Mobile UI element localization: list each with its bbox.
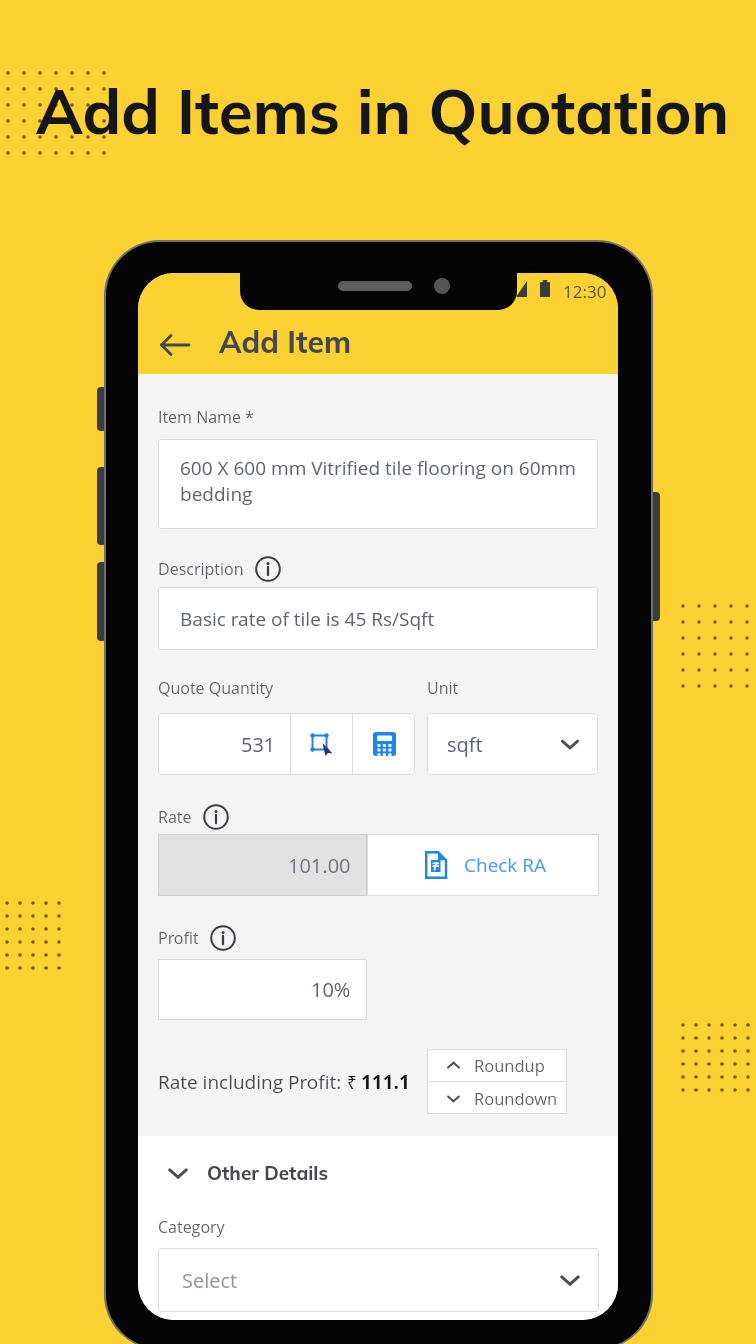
staticText: 600 X 600 mm Vitrified tile flooring on …: [180, 455, 584, 507]
staticText: 101.00: [288, 852, 351, 879]
button[interactable]: Calculator: [353, 713, 415, 775]
button[interactable]: Select: [158, 1248, 599, 1312]
staticText: Profit: [158, 927, 199, 949]
staticText: 10%: [311, 976, 351, 1003]
staticText: 12:30: [563, 280, 607, 303]
staticText: 111.1: [361, 1069, 410, 1095]
button[interactable]: Roundup: [427, 1049, 567, 1081]
staticText: Roundup: [474, 1054, 545, 1076]
staticText: Select: [182, 1267, 238, 1294]
button[interactable]: sqft: [427, 713, 598, 775]
staticText: Check RA: [464, 852, 547, 878]
staticText: Basic rate of tile is 45 Rs/Sqft: [180, 606, 435, 632]
button[interactable]: Check RA: [367, 834, 599, 896]
staticText: Category: [158, 1216, 225, 1238]
staticText: Rate: [158, 806, 192, 828]
button[interactable]: Back: [152, 322, 198, 368]
staticText: Item Name *: [158, 406, 254, 428]
button[interactable]: 101.00: [158, 834, 367, 896]
staticText: ₹: [347, 1071, 357, 1094]
staticText: sqft: [447, 731, 483, 758]
button[interactable]: 531: [158, 713, 290, 775]
button[interactable]: Measure from drawing: [291, 713, 352, 775]
staticText: Unit: [427, 677, 459, 699]
staticText: Roundown: [474, 1087, 558, 1109]
staticText: Other Details: [207, 1161, 328, 1185]
button[interactable]: Basic rate of tile is 45 Rs/Sqft: [158, 587, 598, 650]
staticText: Add Item: [219, 323, 351, 361]
staticText: Add Items in Quotation: [36, 72, 730, 150]
staticText: Rate including Profit:: [158, 1069, 347, 1095]
staticText: 531: [241, 731, 276, 758]
staticText: Description: [158, 558, 244, 580]
staticText: Quote Quantity: [158, 677, 274, 699]
button[interactable]: Roundown: [427, 1082, 567, 1114]
button[interactable]: 600 X 600 mm Vitrified tile flooring on …: [158, 439, 598, 529]
button[interactable]: Other Details: [138, 1151, 618, 1195]
button[interactable]: 10%: [158, 959, 367, 1020]
